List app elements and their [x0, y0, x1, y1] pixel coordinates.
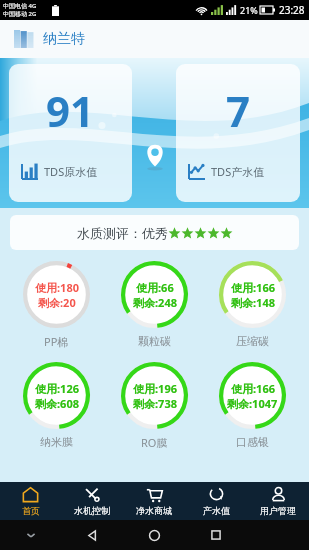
staticText: TDS原水值: [44, 164, 98, 179]
staticText: 使用:166: [231, 280, 275, 295]
button[interactable]: 使用:196: [105, 361, 203, 450]
staticText: 使用:66: [136, 280, 174, 295]
button[interactable]: 使用:180: [8, 260, 105, 349]
button[interactable]: 使用:166: [203, 260, 301, 348]
staticText: 剩余:148: [231, 295, 275, 310]
button[interactable]: 使用:66: [105, 260, 203, 348]
staticText: 中国移动 2G: [3, 10, 37, 18]
staticText: 纳米膜: [40, 435, 73, 449]
staticText: 使用:126: [35, 381, 79, 396]
button[interactable]: 91: [9, 64, 132, 202]
button[interactable]: 使用:166: [203, 361, 301, 449]
staticText: 21%: [240, 4, 258, 16]
staticText: 压缩碳: [236, 334, 269, 348]
staticText: 用户管理: [260, 505, 296, 516]
button[interactable]: 水质测评：优秀: [10, 215, 299, 250]
button[interactable]: 用户管理: [247, 482, 309, 520]
staticText: 23:28: [279, 3, 305, 17]
staticText: 纳兰特: [43, 30, 85, 48]
button[interactable]: 净水商城: [123, 482, 185, 520]
staticText: 剩余:608: [35, 396, 79, 411]
staticText: 使用:180: [35, 280, 79, 295]
staticText: PP棉: [44, 334, 69, 349]
staticText: 首页: [22, 505, 40, 516]
button[interactable]: 7: [176, 64, 300, 202]
staticText: 中国电信 4G: [3, 2, 37, 10]
staticText: 水机控制: [74, 505, 110, 516]
staticText: 口感银: [236, 435, 269, 449]
staticText: 产水值: [203, 505, 230, 516]
button[interactable]: 水机控制: [61, 482, 123, 520]
staticText: 剩余:248: [133, 295, 177, 310]
staticText: TDS产水值: [211, 164, 265, 179]
staticText: 7: [226, 82, 251, 139]
staticText: 净水商城: [136, 505, 172, 516]
staticText: 使用:196: [133, 381, 177, 396]
staticText: 剩余:738: [133, 396, 177, 411]
staticText: 使用:166: [231, 381, 275, 396]
staticText: 水质测评：优秀: [77, 225, 168, 241]
button[interactable]: 产水值: [185, 482, 247, 520]
staticText: 剩余:20: [38, 295, 76, 310]
other: Hide: [25, 529, 37, 541]
button[interactable]: 首页: [0, 482, 61, 520]
other: Home: [148, 529, 161, 542]
staticText: 颗粒碳: [138, 334, 171, 348]
staticText: 91: [46, 82, 95, 139]
other: Recents: [210, 529, 222, 541]
staticText: RO膜: [141, 435, 168, 450]
staticText: 剩余:1047: [227, 396, 278, 411]
other: Back: [86, 529, 99, 542]
button[interactable]: 使用:126: [8, 361, 105, 449]
